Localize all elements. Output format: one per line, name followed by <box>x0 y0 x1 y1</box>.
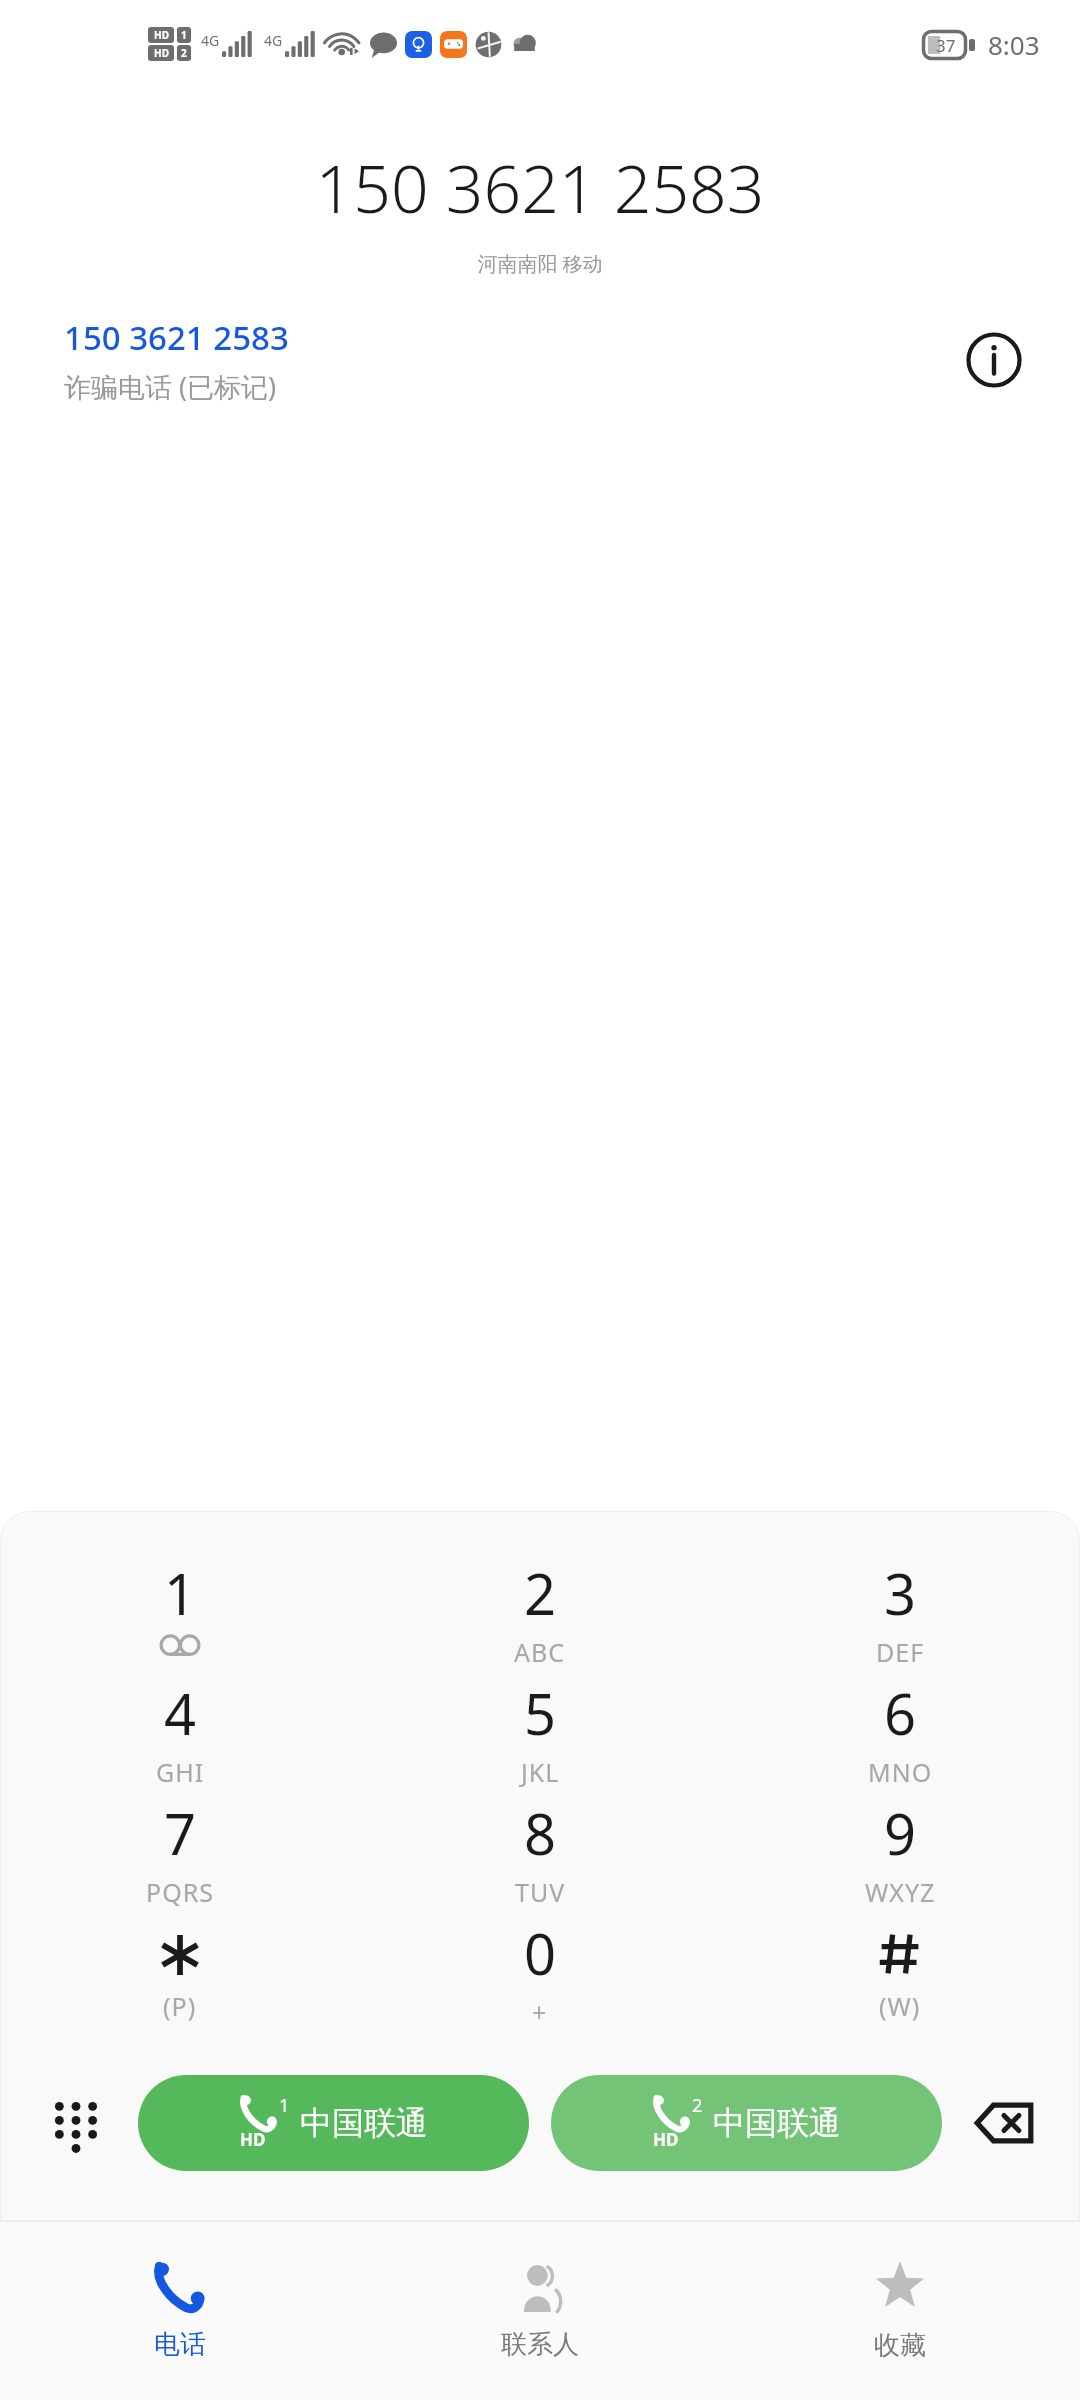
button[interactable]: 2 <box>360 1555 720 1675</box>
staticText: WXYZ <box>865 1875 936 1909</box>
staticText: 4 <box>164 1675 197 1751</box>
staticText: 1 <box>181 28 187 42</box>
button[interactable]: 150 3621 2583 <box>64 315 958 405</box>
staticText: 1 <box>279 2093 290 2118</box>
staticText: PQRS <box>146 1875 214 1909</box>
button[interactable]: 9 <box>720 1795 1080 1915</box>
staticText: GHI <box>156 1755 205 1789</box>
button[interactable]: Info <box>958 324 1030 396</box>
button[interactable]: (P) <box>0 1915 360 2043</box>
staticText: 37 <box>936 34 956 57</box>
staticText: 0 <box>524 1915 557 1991</box>
staticText: 150 3621 2583 <box>64 315 289 360</box>
staticText: 河南南阳 移动 <box>0 250 1080 277</box>
staticText: 收藏 <box>874 2329 926 2362</box>
staticText: HD <box>240 2128 266 2151</box>
button[interactable]: 5 <box>360 1675 720 1795</box>
staticText: 7 <box>164 1795 197 1871</box>
staticText: MNO <box>868 1755 933 1789</box>
staticText: DEF <box>876 1635 925 1669</box>
staticText: TUV <box>515 1875 566 1909</box>
staticText: ABC <box>514 1635 566 1669</box>
staticText: 8:03 <box>988 27 1040 62</box>
staticText: 诈骗电话 (已标记) <box>64 368 277 405</box>
staticText: (P) <box>163 1989 197 2023</box>
staticText: JKL <box>521 1755 560 1789</box>
button[interactable]: 2 <box>551 2075 942 2171</box>
button[interactable]: 电话 <box>0 2222 360 2400</box>
staticText: 150 3621 2583 <box>0 142 1080 232</box>
staticText: 2 <box>181 46 187 60</box>
staticText: 5 <box>524 1675 557 1751</box>
staticText: 1 <box>164 1555 197 1631</box>
button[interactable]: 4 <box>0 1675 360 1795</box>
staticText: 3 <box>884 1555 917 1631</box>
staticText: 中国联通 <box>300 2103 428 2143</box>
button[interactable]: 8 <box>360 1795 720 1915</box>
staticText: HD <box>154 28 169 42</box>
staticText: 9 <box>884 1795 917 1871</box>
button[interactable]: 3 <box>720 1555 1080 1675</box>
button[interactable]: 1 <box>0 1555 360 1675</box>
staticText: (W) <box>879 1989 921 2023</box>
staticText: 电话 <box>154 2328 206 2361</box>
button[interactable]: Dialpad <box>28 2075 124 2171</box>
button[interactable]: Backspace <box>956 2075 1052 2171</box>
button[interactable]: (W) <box>720 1915 1080 2043</box>
staticText: 6 <box>884 1675 917 1751</box>
button[interactable]: 6 <box>720 1675 1080 1795</box>
button[interactable]: 联系人 <box>360 2222 720 2400</box>
staticText: 2 <box>524 1555 557 1631</box>
staticText: 4G <box>201 31 220 50</box>
staticText: 4G <box>264 31 283 50</box>
button[interactable]: 收藏 <box>720 2222 1080 2400</box>
staticText: 中国联通 <box>713 2103 841 2143</box>
staticText: 联系人 <box>501 2328 579 2361</box>
button[interactable]: 0 <box>360 1915 720 2043</box>
staticText: HD <box>154 46 169 60</box>
button[interactable]: 7 <box>0 1795 360 1915</box>
staticText: 8 <box>524 1795 557 1871</box>
staticText: + <box>532 1995 548 2029</box>
button[interactable]: 1 <box>138 2075 529 2171</box>
staticText: 2 <box>692 2093 703 2118</box>
staticText: HD <box>653 2128 679 2151</box>
